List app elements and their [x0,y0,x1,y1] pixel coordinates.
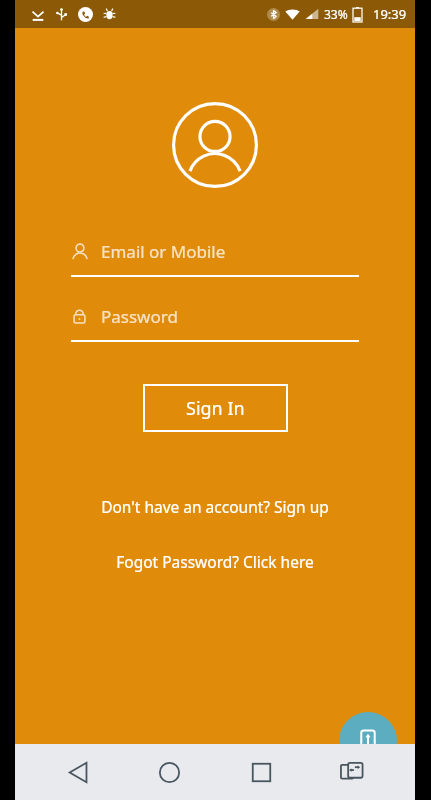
staticText: Email or Mobile [101,240,226,263]
button[interactable]: Home [141,744,197,800]
staticText: Don't have an account? Sign up [101,496,329,517]
button[interactable]: Don't have an account? Sign up [15,494,415,519]
button[interactable]: Switch apps [324,744,380,800]
button[interactable]: Recent apps [233,744,289,800]
button[interactable]: Email or Mobile [71,240,359,277]
button[interactable]: Back [50,744,106,800]
staticText: Password [101,305,178,328]
button[interactable]: Rotate screen [339,712,397,770]
staticText: Sign In [186,396,245,421]
button[interactable]: Password [71,305,359,342]
staticText: Fogot Password? Click here [116,551,314,572]
button[interactable]: Fogot Password? Click here [15,549,415,574]
staticText: 19:39 [373,5,407,23]
staticText: 33% [324,6,348,22]
button[interactable]: Sign In [143,384,288,432]
